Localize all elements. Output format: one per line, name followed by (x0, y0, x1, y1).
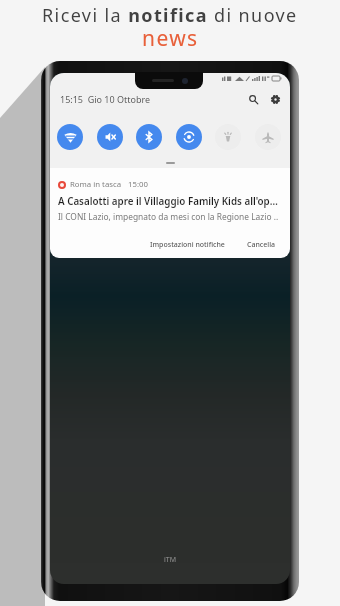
staticText: Roma in tasca (70, 179, 122, 190)
button[interactable]: Cancella (247, 240, 276, 250)
button[interactable]: Cerca (246, 92, 260, 106)
staticText: Il CONI Lazio, impegnato da mesi con la … (58, 211, 279, 222)
button[interactable]: Toggle (136, 124, 162, 150)
staticText: Ricevi la notifica di nuove (42, 3, 298, 28)
button[interactable]: Impostazioni notifiche (150, 240, 225, 250)
button[interactable]: Toggle (215, 124, 241, 150)
staticText: iTM (164, 555, 177, 565)
button[interactable]: Toggle (57, 124, 83, 150)
staticText: A Casalotti apre il Villaggio Family Kid… (58, 195, 282, 208)
staticText: 15:15 Gio 10 Ottobre (60, 93, 151, 105)
button[interactable]: Impostazioni (268, 92, 282, 106)
button[interactable]: Toggle (97, 124, 123, 150)
button[interactable]: Roma in tasca (50, 168, 290, 258)
button[interactable]: Toggle (176, 124, 202, 150)
staticText: news (142, 24, 199, 53)
staticText: 15:00 (128, 179, 148, 190)
button[interactable]: Toggle (255, 124, 281, 150)
